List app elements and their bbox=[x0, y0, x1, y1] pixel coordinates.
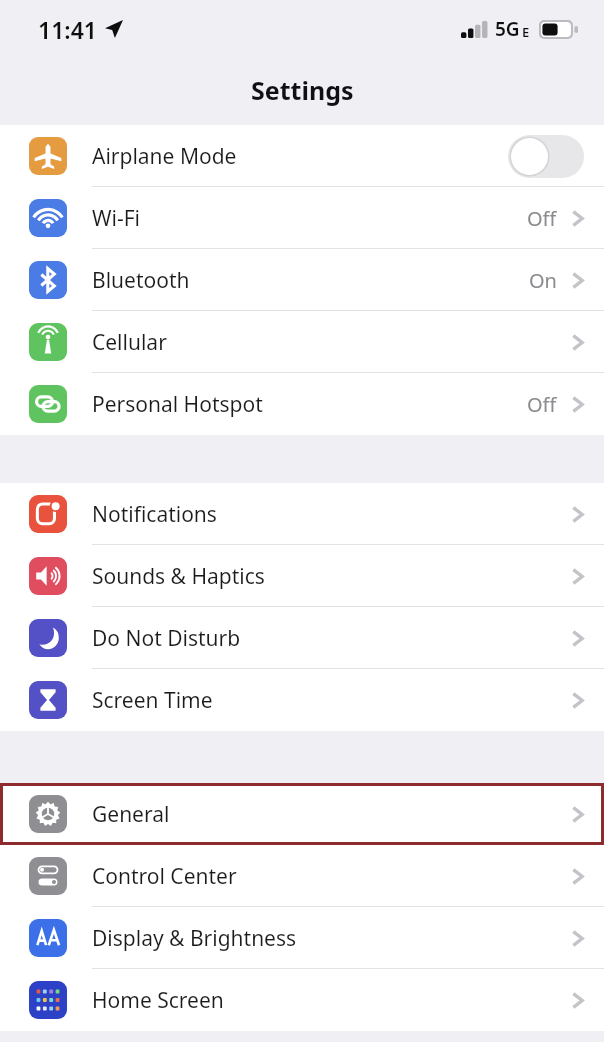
staticText: 5G bbox=[495, 16, 520, 42]
button[interactable]: Notifications bbox=[0, 483, 604, 545]
staticText: Notifications bbox=[92, 500, 571, 529]
button[interactable]: Display & Brightness bbox=[0, 907, 604, 969]
staticText: Sounds & Haptics bbox=[92, 562, 571, 591]
button[interactable]: Sounds & Haptics bbox=[0, 545, 604, 607]
staticText: Do Not Disturb bbox=[92, 624, 571, 653]
button[interactable]: Do Not Disturb bbox=[0, 607, 604, 669]
button[interactable]: Screen Time bbox=[0, 669, 604, 731]
staticText: Wi-Fi bbox=[92, 204, 527, 233]
button[interactable]: Wi-Fi bbox=[0, 187, 604, 249]
staticText: Off bbox=[527, 205, 557, 232]
staticText: General bbox=[92, 800, 571, 829]
staticText: Off bbox=[527, 391, 557, 418]
staticText: Screen Time bbox=[92, 686, 571, 715]
staticText: Display & Brightness bbox=[92, 924, 571, 953]
button[interactable]: Personal Hotspot bbox=[0, 373, 604, 435]
staticText: Control Center bbox=[92, 862, 571, 891]
staticText: Settings bbox=[251, 73, 354, 107]
staticText: Cellular bbox=[92, 328, 571, 357]
other: Airplane Mode toggle bbox=[508, 135, 584, 178]
staticText: Airplane Mode bbox=[92, 142, 508, 171]
button[interactable]: Control Center bbox=[0, 845, 604, 907]
staticText: Personal Hotspot bbox=[92, 390, 527, 419]
staticText: On bbox=[529, 267, 557, 294]
staticText: Home Screen bbox=[92, 986, 571, 1015]
button[interactable]: Home Screen bbox=[0, 969, 604, 1031]
button[interactable]: Bluetooth bbox=[0, 249, 604, 311]
staticText: 11:41 bbox=[38, 14, 97, 45]
button[interactable]: General bbox=[0, 783, 604, 845]
staticText: E bbox=[522, 23, 530, 41]
button[interactable]: Airplane Mode bbox=[0, 125, 604, 187]
button[interactable]: Cellular bbox=[0, 311, 604, 373]
staticText: Bluetooth bbox=[92, 266, 529, 295]
